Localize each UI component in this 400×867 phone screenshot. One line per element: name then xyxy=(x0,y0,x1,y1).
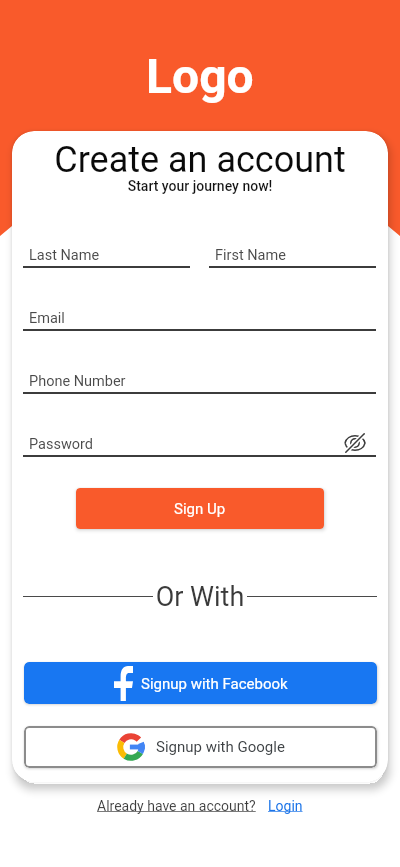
staticText: Signup with Google xyxy=(156,738,285,756)
button[interactable]: Last Name xyxy=(23,240,190,268)
button[interactable]: Login xyxy=(268,798,303,814)
staticText: Last Name xyxy=(29,247,100,264)
staticText: Logo xyxy=(146,48,254,104)
staticText: Signup with Facebook xyxy=(141,675,288,693)
staticText: Password xyxy=(29,436,94,453)
staticText: Sign Up xyxy=(174,500,226,518)
staticText: Phone Number xyxy=(29,373,126,390)
button[interactable]: Email xyxy=(23,303,376,331)
staticText: Create an account xyxy=(12,139,388,181)
staticText: First Name xyxy=(215,247,286,264)
button[interactable]: Phone Number xyxy=(23,366,376,394)
button[interactable]: Password xyxy=(23,429,376,457)
staticText: Email xyxy=(29,310,65,327)
button[interactable]: Sign Up xyxy=(76,488,324,529)
other: Show password xyxy=(344,432,366,454)
button[interactable]: Already have an account? xyxy=(97,798,256,814)
button[interactable]: First Name xyxy=(209,240,376,268)
staticText: Start your journey now! xyxy=(12,178,388,194)
button[interactable]: Signup with Google xyxy=(24,726,377,768)
button[interactable]: Signup with Facebook xyxy=(24,662,377,704)
staticText: Or With xyxy=(12,581,388,611)
